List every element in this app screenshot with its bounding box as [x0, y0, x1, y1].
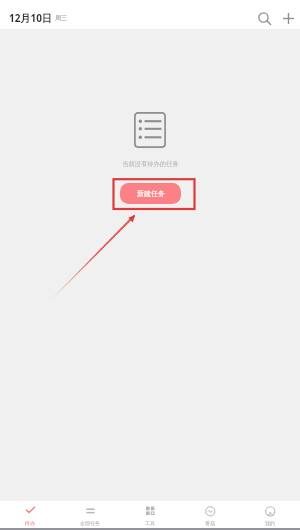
staticText: 新建任务	[137, 189, 165, 198]
staticText: 番茄	[205, 520, 215, 526]
button[interactable]: 番茄	[180, 501, 240, 528]
staticText: 工具	[145, 520, 155, 526]
button[interactable]: 工具	[120, 501, 180, 528]
button[interactable]: 新建任务	[120, 183, 181, 204]
staticText: 12月10日	[9, 11, 52, 25]
staticText: 全部任务	[80, 520, 100, 526]
staticText: 当前没有待办的任务	[122, 160, 179, 168]
staticText: 待办	[25, 520, 35, 526]
button[interactable]: 全部任务	[60, 501, 120, 528]
button[interactable]: 待办	[0, 501, 60, 528]
button[interactable]: Search	[253, 7, 275, 29]
button[interactable]: Add	[277, 7, 299, 29]
staticText: 我的	[265, 520, 275, 526]
button[interactable]: 我的	[240, 501, 300, 528]
staticText: 周三	[55, 14, 67, 22]
